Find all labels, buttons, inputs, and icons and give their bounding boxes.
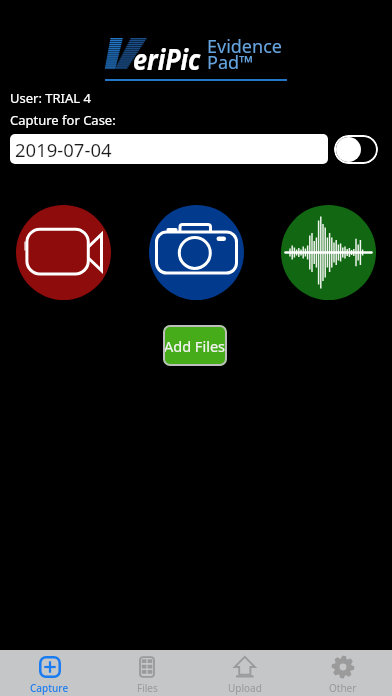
staticText: Capture bbox=[30, 681, 69, 695]
button[interactable]: Toggle bbox=[334, 135, 378, 164]
staticText: Evidence bbox=[207, 34, 282, 59]
button[interactable]: Record audio bbox=[281, 205, 376, 300]
button[interactable]: Capture bbox=[0, 650, 98, 696]
button[interactable]: Add Files bbox=[163, 325, 227, 366]
button[interactable]: Upload bbox=[196, 650, 294, 696]
staticText: Capture for Case: bbox=[10, 111, 116, 129]
staticText: Add Files bbox=[164, 336, 226, 356]
button[interactable]: Record video bbox=[16, 205, 111, 300]
button[interactable]: Other bbox=[294, 650, 392, 696]
staticText: Upload bbox=[228, 681, 262, 695]
staticText: Files bbox=[137, 681, 158, 695]
staticText: User: TRIAL 4 bbox=[10, 89, 91, 107]
staticText: Other bbox=[329, 681, 357, 695]
staticText: Pad™ bbox=[207, 50, 253, 75]
staticText: 2019-07-04 bbox=[15, 137, 112, 162]
staticText: eriPic bbox=[133, 40, 200, 78]
button[interactable]: 2019-07-04 bbox=[10, 134, 328, 164]
button[interactable]: Take photo bbox=[149, 205, 244, 300]
button[interactable]: Files bbox=[98, 650, 196, 696]
